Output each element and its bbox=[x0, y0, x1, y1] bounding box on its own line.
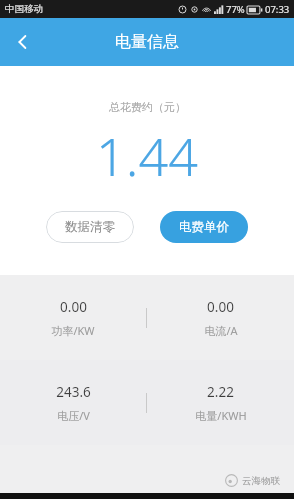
staticText: 总花费约（元） bbox=[109, 100, 186, 114]
staticText: 电流/A bbox=[204, 323, 238, 338]
staticText: 2.22 bbox=[207, 383, 234, 401]
button[interactable]: 2.22 bbox=[147, 383, 294, 423]
button[interactable]: 243.6 bbox=[0, 383, 146, 423]
staticText: 0.00 bbox=[60, 298, 87, 316]
staticText: 电量信息 bbox=[115, 32, 179, 52]
staticText: 0.00 bbox=[207, 298, 234, 316]
button[interactable]: 0.00 bbox=[0, 298, 146, 338]
staticText: 云海物联 bbox=[242, 475, 280, 487]
button[interactable]: 数据清零 bbox=[46, 211, 134, 243]
button[interactable]: Back bbox=[0, 19, 46, 65]
button[interactable]: 0.00 bbox=[147, 298, 294, 338]
staticText: 77% bbox=[226, 3, 245, 16]
staticText: 243.6 bbox=[56, 383, 91, 401]
staticText: 中国移动 bbox=[5, 3, 43, 15]
staticText: 功率/KW bbox=[51, 323, 95, 338]
button[interactable]: 电费单价 bbox=[160, 211, 248, 243]
staticText: 电压/V bbox=[57, 408, 90, 423]
staticText: 1.44 bbox=[96, 120, 198, 191]
staticText: 电量/KWH bbox=[195, 408, 247, 423]
staticText: 07:33 bbox=[265, 3, 290, 16]
staticText: 电费单价 bbox=[179, 219, 229, 235]
staticText: 数据清零 bbox=[65, 219, 115, 235]
